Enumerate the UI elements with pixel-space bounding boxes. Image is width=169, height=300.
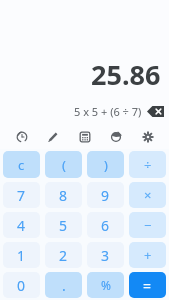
button[interactable]: +	[129, 242, 166, 268]
staticText: 7	[17, 186, 26, 205]
button[interactable]: 4	[3, 212, 40, 238]
button[interactable]: c	[3, 151, 40, 178]
button[interactable]: 8	[45, 182, 82, 208]
button[interactable]: Backspace	[147, 106, 164, 117]
button[interactable]: 3	[87, 242, 124, 268]
staticText: 1	[17, 246, 26, 265]
button[interactable]: )	[87, 151, 124, 178]
button[interactable]: 5	[45, 212, 82, 238]
staticText: +	[144, 246, 152, 264]
button[interactable]: 0	[3, 272, 40, 298]
button[interactable]: .	[45, 272, 82, 298]
button[interactable]: 9	[87, 182, 124, 208]
staticText: 6	[101, 216, 110, 235]
button[interactable]: −	[129, 212, 166, 238]
staticText: 2	[59, 246, 68, 265]
button[interactable]: Edit	[43, 127, 63, 147]
staticText: %	[101, 277, 111, 293]
staticText: 0	[17, 276, 26, 295]
button[interactable]: Settings	[138, 127, 158, 147]
staticText: −	[144, 216, 152, 234]
button[interactable]: 6	[87, 212, 124, 238]
button[interactable]: =	[129, 272, 166, 298]
staticText: 3	[101, 246, 110, 265]
staticText: .	[62, 276, 66, 295]
staticText: (	[62, 156, 66, 174]
button[interactable]: %	[87, 272, 124, 298]
button[interactable]: (	[45, 151, 82, 178]
staticText: ÷	[144, 156, 152, 174]
button[interactable]: ×	[129, 182, 166, 208]
button[interactable]: Calculator	[75, 127, 95, 147]
button[interactable]: 2	[45, 242, 82, 268]
button[interactable]: History	[12, 127, 32, 147]
staticText: )	[104, 156, 108, 174]
button[interactable]: Unit converter	[106, 127, 126, 147]
staticText: =	[143, 276, 152, 295]
button[interactable]: ÷	[129, 151, 166, 178]
button[interactable]: 1	[3, 242, 40, 268]
staticText: c	[18, 156, 25, 174]
staticText: 9	[101, 186, 110, 205]
button[interactable]: 7	[3, 182, 40, 208]
staticText: 25.86	[91, 56, 161, 93]
staticText: 4	[17, 216, 26, 235]
staticText: 5 x 5 + (6 ÷ 7)	[74, 104, 142, 119]
staticText: 8	[59, 186, 68, 205]
staticText: ×	[144, 186, 152, 204]
staticText: 5	[59, 216, 68, 235]
